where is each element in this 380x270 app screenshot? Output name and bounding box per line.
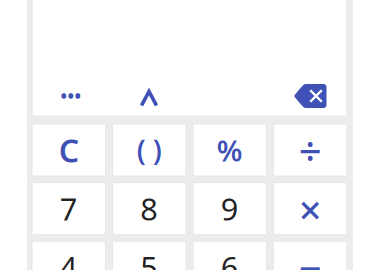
button[interactable]: More functions — [32, 79, 110, 113]
button[interactable]: % — [193, 124, 266, 176]
staticText: % — [217, 130, 243, 169]
button[interactable]: 6 — [193, 241, 266, 270]
staticText: 4 — [60, 247, 78, 270]
staticText: ( ) — [137, 131, 162, 169]
staticText: 8 — [140, 188, 158, 229]
button[interactable]: × — [273, 183, 347, 235]
button[interactable]: − — [273, 241, 347, 270]
staticText: 5 — [140, 247, 158, 270]
staticText: ÷ — [299, 124, 322, 176]
staticText: × — [299, 183, 322, 235]
button[interactable]: Delete — [284, 79, 336, 113]
button[interactable]: 5 — [112, 241, 186, 270]
button[interactable]: ÷ — [273, 124, 347, 176]
button[interactable]: 9 — [193, 183, 266, 235]
button[interactable]: Exponent — [110, 79, 188, 113]
staticText: 7 — [60, 188, 78, 229]
staticText: 6 — [221, 247, 239, 270]
button[interactable]: C — [32, 124, 105, 176]
button[interactable]: 4 — [32, 241, 105, 270]
button[interactable]: 7 — [32, 183, 105, 235]
staticText: C — [59, 129, 79, 171]
staticText: − — [299, 241, 322, 270]
button[interactable]: ( ) — [112, 124, 186, 176]
staticText: ••• — [60, 84, 81, 107]
staticText: 9 — [221, 188, 239, 229]
button[interactable]: 8 — [112, 183, 186, 235]
